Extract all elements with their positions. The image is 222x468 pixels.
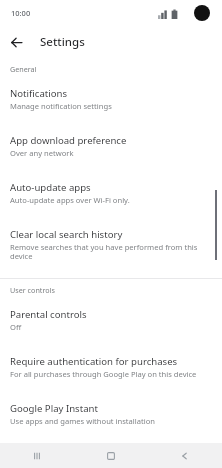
button[interactable]: Back — [148, 443, 222, 468]
button[interactable]: Auto-update apps — [0, 174, 222, 214]
staticText: Manage notification settings — [10, 101, 112, 111]
staticText: Clear local search history — [10, 228, 123, 241]
staticText: Notifications — [10, 87, 68, 100]
staticText: 10:00 — [11, 8, 31, 18]
staticText: Google Play Instant — [10, 402, 98, 415]
button[interactable]: App download preference — [0, 127, 222, 167]
button[interactable]: Google Play Instant — [0, 395, 222, 435]
staticText: Over any network — [10, 148, 74, 158]
staticText: Auto-update apps — [10, 181, 91, 194]
staticText: Require authentication for purchases — [10, 355, 178, 368]
staticText: Off — [10, 322, 22, 332]
staticText: Parental controls — [10, 308, 87, 321]
button[interactable]: Require authentication for purchases — [0, 348, 222, 388]
staticText: App download preference — [10, 134, 127, 147]
staticText: Use apps and games without installation — [10, 416, 156, 426]
staticText: Auto-update apps over Wi-Fi only. — [10, 195, 130, 205]
staticText: Remove searches that you have performed … — [10, 242, 208, 262]
button[interactable]: Recent apps — [0, 443, 74, 468]
button[interactable]: Clear local search history — [0, 221, 222, 271]
staticText: General — [10, 64, 37, 74]
staticText: For all purchases through Google Play on… — [10, 369, 197, 379]
button[interactable]: Notifications — [0, 80, 222, 120]
staticText: Settings — [40, 34, 85, 50]
staticText: User controls — [10, 285, 55, 295]
button[interactable]: Home — [74, 443, 148, 468]
button[interactable]: Back — [0, 26, 32, 58]
button[interactable]: Parental controls — [0, 301, 222, 341]
